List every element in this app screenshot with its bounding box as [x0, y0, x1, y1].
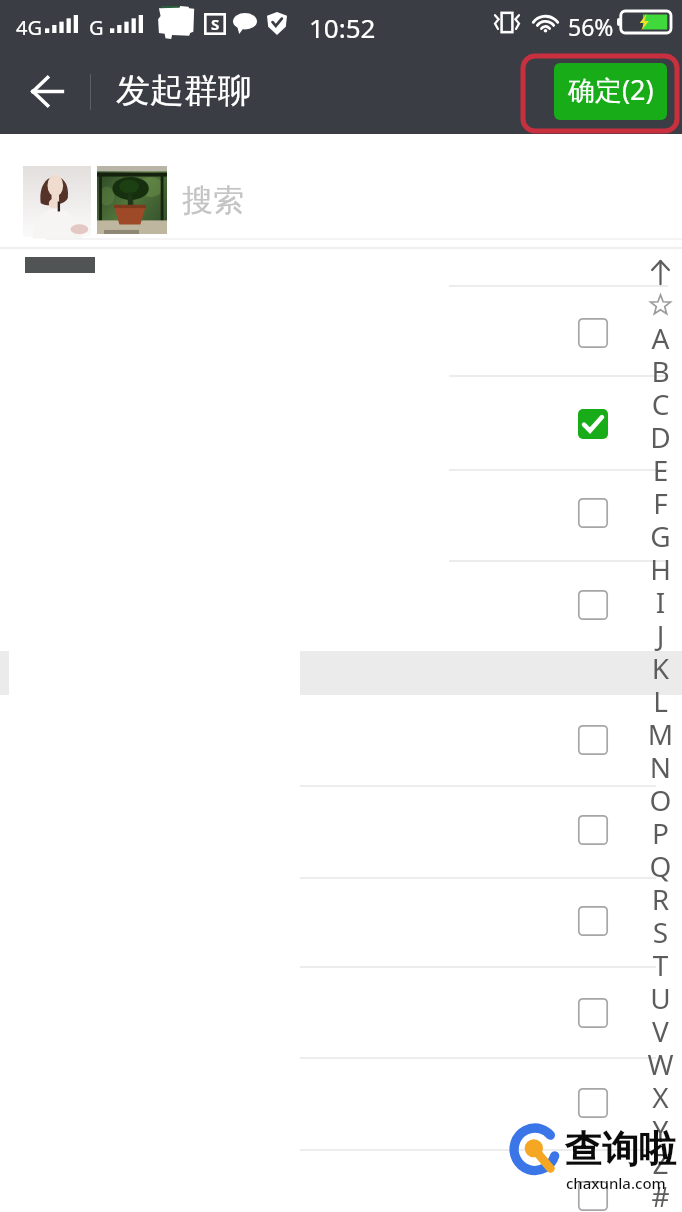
staticText: S: [211, 14, 220, 34]
staticText: I: [643, 583, 678, 621]
staticText: E: [643, 451, 678, 489]
staticText: 搜索: [182, 181, 244, 220]
button[interactable]: Select contact: [558, 1073, 628, 1133]
staticText: J: [643, 616, 678, 654]
staticText: G: [89, 14, 104, 41]
staticText: Z: [643, 1144, 678, 1182]
button[interactable]: Select contact: [558, 483, 628, 543]
button[interactable]: Select contact: [558, 1166, 628, 1212]
staticText: 查询啦: [565, 1126, 676, 1173]
staticText: G: [643, 517, 678, 555]
button[interactable]: Select contact: [558, 710, 628, 770]
staticText: Q: [643, 847, 678, 885]
staticText: V: [643, 1012, 678, 1050]
staticText: W: [643, 1045, 678, 1083]
button[interactable]: Back: [0, 52, 92, 134]
staticText: H: [643, 550, 678, 588]
staticText: O: [643, 781, 678, 819]
staticText: 确定(2): [568, 71, 654, 108]
staticText: P: [643, 814, 678, 852]
staticText: B: [643, 352, 678, 390]
staticText: L: [643, 682, 678, 720]
staticText: M: [643, 715, 678, 753]
staticText: K: [643, 649, 678, 687]
button[interactable]: Select contact: [558, 575, 628, 635]
staticText: D: [643, 418, 678, 456]
staticText: 56%: [568, 11, 614, 42]
staticText: U: [643, 979, 678, 1017]
staticText: 10:52: [309, 10, 376, 45]
staticText: F: [643, 484, 678, 522]
staticText: C: [643, 385, 678, 423]
staticText: #: [643, 1177, 678, 1212]
staticText: A: [643, 319, 678, 357]
button[interactable]: Select contact: [558, 800, 628, 860]
staticText: S: [643, 913, 678, 951]
button[interactable]: 确定(2): [554, 63, 667, 120]
button[interactable]: Alphabet index: [643, 257, 678, 1212]
staticText: Y: [643, 1111, 678, 1149]
button[interactable]: Select contact: [558, 983, 628, 1043]
staticText: T: [643, 946, 678, 984]
staticText: N: [643, 748, 678, 786]
button[interactable]: Select contact: [558, 303, 628, 363]
staticText: 4G: [16, 14, 42, 41]
staticText: chaxunla.com: [566, 1173, 666, 1193]
staticText: R: [643, 880, 678, 918]
button[interactable]: Select contact: [558, 891, 628, 951]
button[interactable]: Contact selected: [558, 394, 628, 454]
staticText: X: [643, 1078, 678, 1116]
staticText: 发起群聊: [116, 69, 252, 112]
